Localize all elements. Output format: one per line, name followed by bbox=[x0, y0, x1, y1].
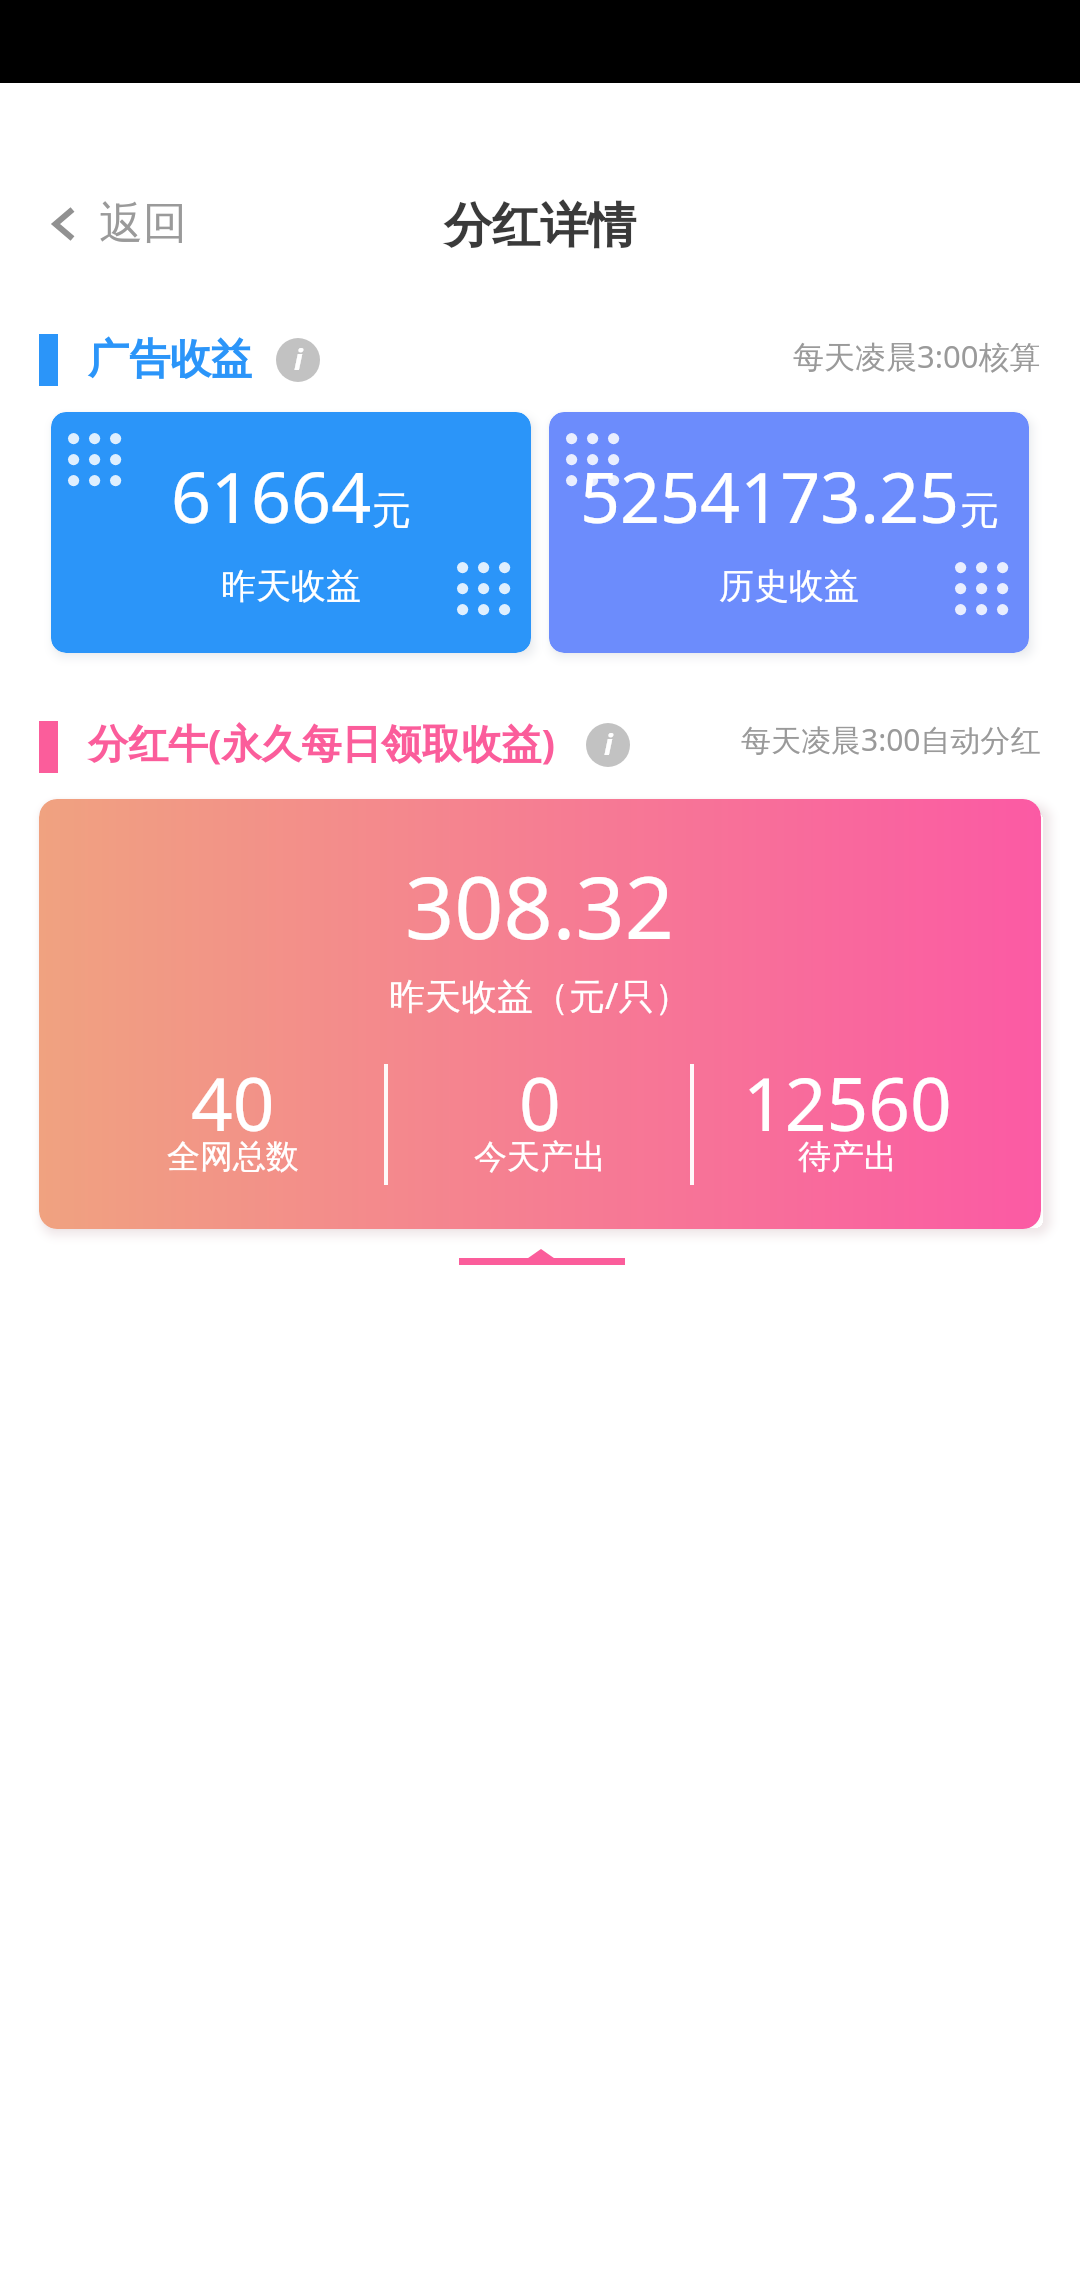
staticText: 昨天收益（元/只） bbox=[389, 971, 691, 1020]
button[interactable]: Info bbox=[276, 338, 320, 382]
staticText: 12560 bbox=[743, 1053, 952, 1152]
staticText: 广告收益 bbox=[88, 334, 252, 386]
staticText: i bbox=[604, 724, 613, 763]
staticText: 元 bbox=[960, 486, 999, 535]
staticText: 历史收益 bbox=[719, 564, 859, 608]
button[interactable]: Expand dividend cow details bbox=[455, 1240, 631, 1276]
button[interactable]: 308.32 bbox=[39, 799, 1041, 1229]
staticText: 每天凌晨3:00自动分红 bbox=[741, 719, 1041, 760]
staticText: 61664 bbox=[171, 448, 372, 543]
staticText: 返回 bbox=[99, 196, 187, 251]
button[interactable]: 61664 bbox=[51, 412, 531, 653]
staticText: i bbox=[294, 339, 303, 378]
staticText: 今天产出 bbox=[474, 1136, 606, 1178]
staticText: 5254173.25 bbox=[580, 448, 960, 543]
staticText: 分红详情 bbox=[444, 196, 636, 256]
button[interactable]: Info bbox=[586, 723, 630, 767]
staticText: 待产出 bbox=[798, 1136, 897, 1178]
staticText: 元 bbox=[372, 486, 411, 535]
staticText: 0 bbox=[519, 1053, 561, 1152]
button[interactable]: 返回 bbox=[41, 186, 199, 261]
staticText: 308.32 bbox=[405, 847, 675, 964]
staticText: 40 bbox=[191, 1053, 275, 1152]
staticText: 昨天收益 bbox=[221, 564, 361, 608]
button[interactable]: 5254173.25 bbox=[549, 412, 1029, 653]
staticText: 分红牛(永久每日领取收益) bbox=[88, 715, 556, 770]
staticText: 每天凌晨3:00核算 bbox=[793, 335, 1041, 377]
staticText: 全网总数 bbox=[167, 1136, 299, 1178]
